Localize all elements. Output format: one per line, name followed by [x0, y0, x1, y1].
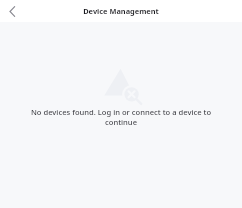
button[interactable]: Back [3, 2, 21, 20]
staticText: Device Management [83, 6, 159, 16]
staticText: No devices found. Log in or connect to a… [14, 107, 228, 127]
